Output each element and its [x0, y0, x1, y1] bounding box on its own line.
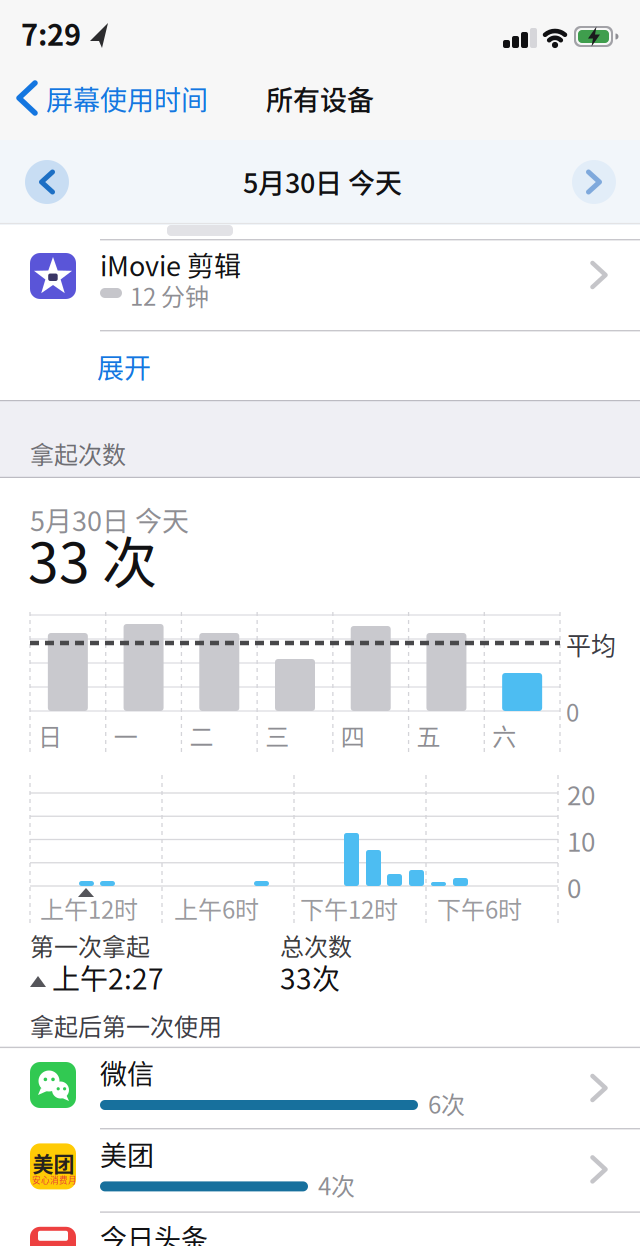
staticText: 今日头条 — [100, 1218, 208, 1246]
staticText: 0 — [567, 868, 581, 906]
button[interactable]: 美团 — [0, 1129, 640, 1209]
staticText: 上午2:27 — [52, 957, 164, 997]
staticText: 5月30日 今天 — [30, 500, 189, 539]
button[interactable]: 屏幕使用时间 — [0, 64, 230, 136]
button[interactable] — [25, 160, 69, 204]
staticText: 总次数 — [280, 928, 352, 963]
staticText: 5月30日 今天 — [243, 162, 402, 201]
button[interactable] — [572, 160, 616, 204]
staticText: 平均 — [566, 626, 616, 662]
staticText: 安心消费月 — [32, 1173, 77, 1186]
staticText: 美团 — [100, 1134, 154, 1173]
staticText: 6次 — [428, 1086, 465, 1121]
staticText: 拿起次数 — [30, 436, 126, 471]
staticText: 日 — [38, 718, 62, 753]
staticText: 33 次 — [28, 519, 157, 599]
staticText: iMovie 剪辑 — [100, 245, 241, 284]
staticText: 展开 — [97, 347, 151, 386]
staticText: 二 — [189, 718, 213, 753]
button[interactable]: 微信 — [0, 1048, 640, 1128]
staticText: 三 — [265, 718, 289, 753]
staticText: 4次 — [318, 1167, 355, 1202]
staticText: 10 — [567, 821, 595, 859]
staticText: 六 — [492, 718, 516, 753]
staticText: 上午12时 — [40, 891, 138, 926]
staticText: 12 分钟 — [130, 278, 209, 313]
button[interactable]: iMovie 剪辑 — [0, 240, 640, 330]
staticText: 33次 — [280, 957, 340, 997]
button[interactable]: 展开 — [0, 333, 200, 395]
staticText: 下午6时 — [437, 891, 522, 926]
staticText: 屏幕使用时间 — [46, 79, 208, 118]
staticText: 四 — [341, 718, 365, 753]
staticText: 0 — [566, 694, 579, 729]
staticText: 20 — [567, 775, 595, 813]
staticText: 下午12时 — [300, 891, 398, 926]
staticText: 第一次拿起 — [30, 928, 150, 963]
staticText: 美团 — [32, 1147, 74, 1178]
staticText: 拿起后第一次使用 — [30, 1008, 222, 1043]
button[interactable]: 今日头条 — [0, 1213, 640, 1246]
staticText: 7:29 — [21, 12, 81, 54]
staticText: 一 — [114, 718, 138, 753]
staticText: 所有设备 — [266, 79, 374, 118]
staticText: 微信 — [100, 1053, 154, 1092]
staticText: 五 — [417, 718, 441, 753]
staticText: 上午6时 — [174, 891, 259, 926]
